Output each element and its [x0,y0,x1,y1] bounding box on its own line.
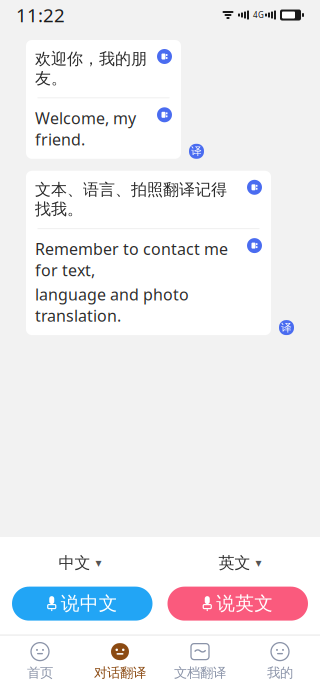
staticText: 首页 [27,665,53,681]
staticText: 欢迎你，我的朋友。 [35,49,147,88]
button[interactable]: Play audio [247,238,262,253]
staticText: ▾ [255,556,261,570]
staticText: 说英文 [216,592,273,615]
button[interactable]: 英文 [160,550,320,576]
staticText: 文档翻译 [174,665,226,681]
button[interactable]: Play audio [247,180,262,195]
button[interactable]: Speak Chinese [12,587,152,621]
staticText: 译 [281,321,292,334]
button[interactable]: 〜 [160,643,240,681]
button[interactable]: Play audio [157,107,172,122]
staticText: 译 [191,145,202,158]
staticText: Remember to contact me for text, [35,238,228,281]
staticText: 4G [253,10,264,20]
button[interactable]: 我的 [240,643,320,681]
staticText: 我的 [267,665,293,681]
button[interactable]: 首页 [0,643,80,681]
staticText: 对话翻译 [94,665,146,681]
staticText: 〜 [193,643,206,660]
staticText: 中文 [58,553,90,573]
button[interactable]: Play audio [157,49,172,64]
button[interactable]: Speak English [167,587,308,621]
staticText: 文本、语言、拍照翻译记得找我。 [35,180,227,219]
button[interactable]: 对话翻译 [80,643,160,681]
staticText: ▾ [95,556,101,570]
staticText: Welcome, my friend. [35,107,136,150]
staticText: 说中文 [61,592,118,615]
button[interactable]: 中文 [0,550,160,576]
staticText: 11:22 [16,3,65,27]
button[interactable]: Translate [279,320,294,335]
staticText: language and photo translation. [35,284,189,326]
staticText: 英文 [218,553,250,573]
button[interactable]: Translate [189,144,204,159]
